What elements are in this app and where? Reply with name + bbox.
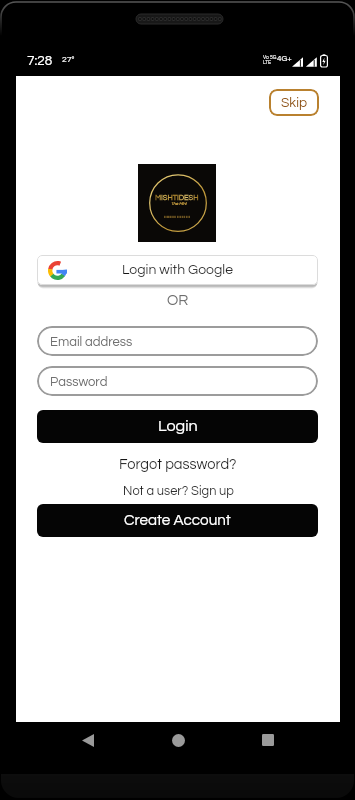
staticText: The Mini xyxy=(171,202,187,206)
staticText: 7:28 xyxy=(27,54,53,68)
staticText: OR xyxy=(167,293,189,308)
staticText: Email address xyxy=(50,335,133,348)
button[interactable]: Create Account xyxy=(37,504,318,537)
button[interactable]: Password xyxy=(37,366,318,396)
button[interactable]: Skip xyxy=(269,89,319,116)
staticText: MISHTIDESH xyxy=(155,194,199,202)
button[interactable]: Back xyxy=(72,724,104,756)
button[interactable]: Recent apps xyxy=(252,724,284,756)
staticText: Skip xyxy=(281,96,308,110)
staticText: 4G+ xyxy=(277,54,292,62)
staticText: Not a user? Sign up xyxy=(123,485,234,498)
staticText: Login xyxy=(158,418,198,435)
staticText: Vo 5G xyxy=(263,55,277,60)
button[interactable]: Email address xyxy=(37,326,318,356)
staticText: LTE xyxy=(263,60,271,65)
button[interactable]: Login xyxy=(37,410,318,443)
staticText: Create Account xyxy=(124,513,231,529)
staticText: 27° xyxy=(62,55,75,64)
button[interactable]: Login with Google xyxy=(37,255,318,285)
staticText: Password xyxy=(50,375,108,388)
staticText: Login with Google xyxy=(122,263,234,277)
button[interactable]: Home xyxy=(162,724,194,756)
staticText: Forgot password? xyxy=(119,457,237,472)
